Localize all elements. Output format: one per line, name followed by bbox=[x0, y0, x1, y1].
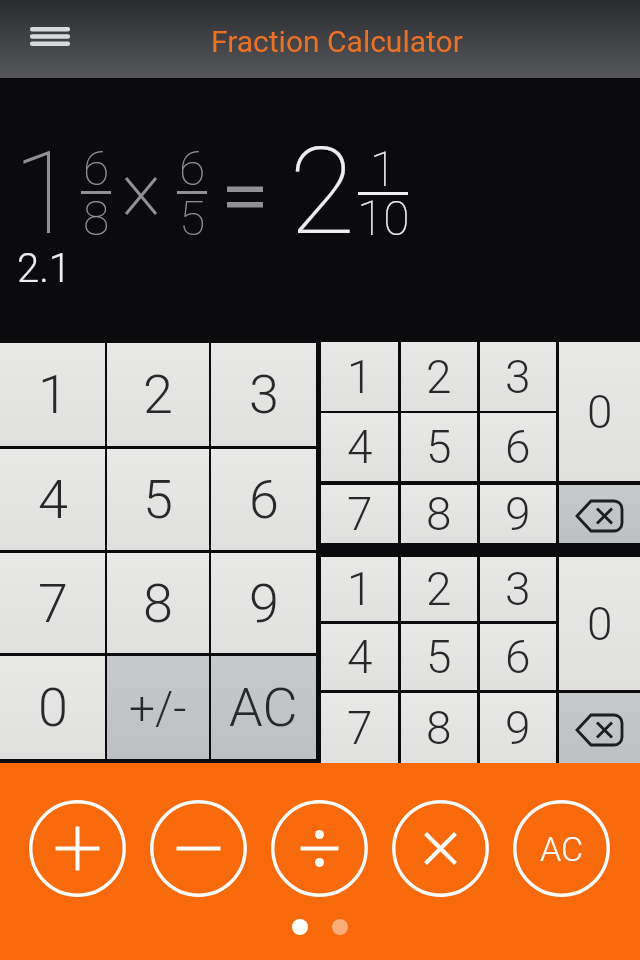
staticText: 6 bbox=[83, 140, 110, 192]
staticText: 8 bbox=[143, 572, 173, 635]
button[interactable]: 5 bbox=[401, 413, 477, 481]
staticText: 6 bbox=[505, 630, 531, 684]
button[interactable]: 5 bbox=[401, 624, 477, 690]
staticText: 1 bbox=[347, 350, 373, 404]
button[interactable]: 1 bbox=[0, 343, 105, 446]
staticText: 2.1 bbox=[17, 245, 71, 292]
staticText: 6 bbox=[249, 468, 279, 531]
button[interactable]: 0 bbox=[0, 656, 105, 759]
staticText: 5 bbox=[426, 630, 452, 684]
staticText: AC bbox=[540, 829, 584, 869]
staticText: 2 bbox=[426, 350, 452, 404]
staticText: 9 bbox=[249, 572, 279, 635]
staticText: 3 bbox=[249, 363, 279, 426]
staticText: 8 bbox=[83, 190, 110, 242]
button[interactable]: +/- bbox=[107, 656, 209, 759]
button[interactable]: 7 bbox=[321, 693, 398, 763]
button[interactable]: 7 bbox=[0, 553, 105, 653]
staticText: 7 bbox=[347, 701, 373, 755]
button[interactable]: 4 bbox=[0, 449, 105, 550]
button[interactable]: AC bbox=[513, 800, 610, 897]
staticText: 5 bbox=[143, 468, 173, 531]
staticText: 4 bbox=[347, 630, 373, 684]
staticText: 1 bbox=[13, 126, 76, 261]
staticText: 2 bbox=[426, 562, 452, 616]
button[interactable]: 3 bbox=[211, 343, 316, 446]
staticText: AC bbox=[229, 676, 298, 739]
button[interactable]: 8 bbox=[401, 485, 477, 543]
button[interactable]: 7 bbox=[321, 485, 398, 543]
staticText: 3 bbox=[505, 350, 531, 404]
staticText: 9 bbox=[505, 701, 531, 755]
staticText: 6 bbox=[505, 420, 531, 474]
button[interactable]: 6 bbox=[211, 449, 316, 550]
staticText: 8 bbox=[426, 701, 452, 755]
button[interactable]: 4 bbox=[321, 624, 398, 690]
button[interactable]: 3 bbox=[480, 342, 556, 411]
button[interactable]: 9 bbox=[211, 553, 316, 653]
button[interactable]: 6 bbox=[480, 624, 556, 690]
staticText: +/- bbox=[129, 681, 187, 735]
staticText: 5 bbox=[426, 420, 452, 474]
button[interactable]: 0 bbox=[559, 342, 640, 481]
staticText: 1 bbox=[347, 562, 373, 616]
staticText: 5 bbox=[179, 190, 206, 242]
button[interactable] bbox=[392, 800, 489, 897]
staticText: 4 bbox=[38, 468, 68, 531]
staticText: 4 bbox=[347, 420, 373, 474]
button[interactable]: 8 bbox=[401, 693, 477, 763]
button[interactable]: 2 bbox=[107, 343, 209, 446]
staticText: 1 bbox=[370, 141, 397, 193]
button[interactable] bbox=[29, 800, 126, 897]
button[interactable]: 6 bbox=[480, 413, 556, 481]
staticText: 9 bbox=[505, 487, 531, 541]
button[interactable]: AC bbox=[211, 656, 316, 759]
staticText: 8 bbox=[426, 487, 452, 541]
button[interactable]: 4 bbox=[321, 413, 398, 481]
staticText: 1 bbox=[38, 363, 68, 426]
staticText: 0 bbox=[38, 676, 68, 739]
button[interactable] bbox=[559, 485, 640, 543]
button[interactable]: 1 bbox=[321, 342, 398, 411]
button[interactable] bbox=[271, 800, 368, 897]
staticText: 7 bbox=[38, 572, 68, 635]
staticText: 0 bbox=[587, 597, 613, 651]
button[interactable] bbox=[559, 693, 640, 763]
button[interactable]: 0 bbox=[559, 557, 640, 690]
staticText: 2 bbox=[143, 363, 173, 426]
button[interactable]: 3 bbox=[480, 557, 556, 621]
button[interactable]: 1 bbox=[321, 557, 398, 621]
button[interactable]: 5 bbox=[107, 449, 209, 550]
button[interactable]: 9 bbox=[480, 485, 556, 543]
button[interactable]: 9 bbox=[480, 693, 556, 763]
button[interactable] bbox=[150, 800, 247, 897]
button[interactable]: 2 bbox=[401, 342, 477, 411]
staticText: 10 bbox=[357, 190, 410, 242]
staticText: Fraction Calculator bbox=[211, 24, 463, 59]
staticText: 0 bbox=[587, 385, 613, 439]
button[interactable]: 8 bbox=[107, 553, 209, 653]
button[interactable]: 2 bbox=[401, 557, 477, 621]
staticText: 3 bbox=[505, 562, 531, 616]
staticText: 2 bbox=[289, 121, 356, 263]
staticText: 6 bbox=[179, 140, 206, 192]
button[interactable] bbox=[22, 18, 78, 58]
staticText: 7 bbox=[347, 487, 373, 541]
